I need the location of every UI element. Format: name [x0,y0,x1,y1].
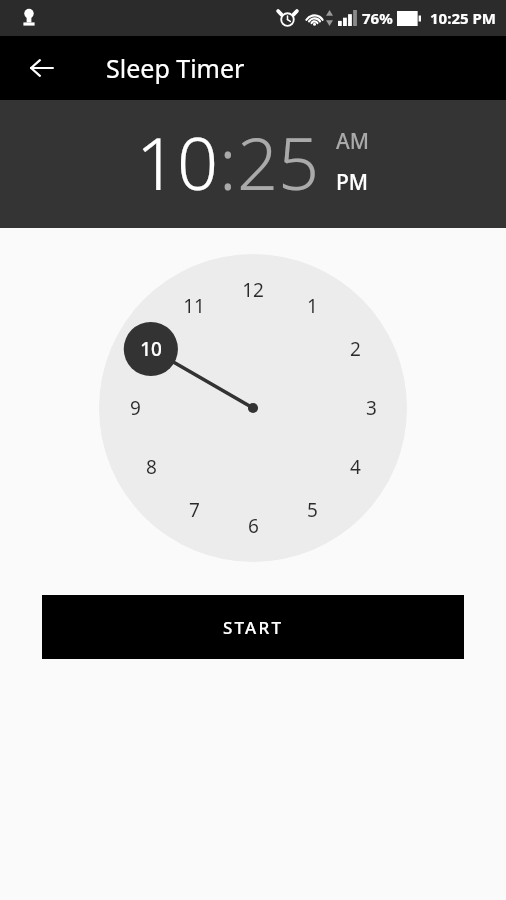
staticText: 4 [350,454,361,480]
staticText: : [219,113,237,211]
staticText: 7 [189,497,200,523]
staticText: 3 [366,395,377,421]
staticText: 1 [307,293,318,319]
button[interactable]: Back [18,44,66,92]
staticText: 76% [362,8,393,28]
staticText: START [223,616,284,639]
staticText: 5 [307,497,318,523]
button[interactable]: PM [336,168,369,197]
button[interactable]: Clock face hour picker [99,254,407,562]
staticText: 9 [130,395,141,421]
staticText: 10:25 PM [430,8,496,28]
staticText: 2 [350,336,361,362]
staticText: 10 [140,336,162,362]
button[interactable]: 25 [237,113,320,211]
staticText: 11 [183,293,205,319]
button[interactable]: START [42,595,464,659]
staticText: 6 [248,513,259,539]
staticText: Sleep Timer [106,51,245,85]
button[interactable]: AM [336,127,370,156]
button[interactable]: 10 [136,113,219,211]
staticText: 8 [146,454,157,480]
staticText: 12 [242,277,264,303]
